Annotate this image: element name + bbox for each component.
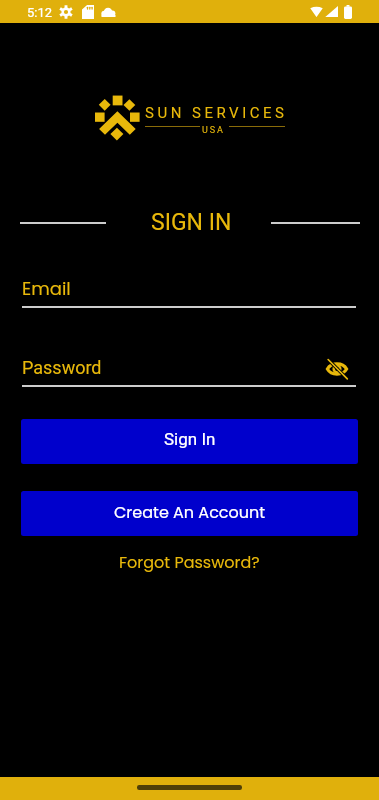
staticText: SUN SERVICES — [145, 104, 288, 122]
button[interactable]: Create An Account — [21, 491, 358, 536]
staticText: Forgot Password? — [119, 551, 260, 573]
staticText: USA — [202, 125, 225, 136]
staticText: Password — [22, 357, 102, 378]
staticText: SIGN IN — [151, 209, 232, 236]
staticText: Create An Account — [114, 501, 266, 523]
staticText: 5:12 — [27, 5, 53, 20]
staticText: Email — [22, 276, 71, 301]
button[interactable]: Toggle password visibility — [324, 356, 350, 382]
button[interactable]: Sign In — [21, 419, 358, 464]
button[interactable]: Forgot Password? — [0, 548, 379, 576]
staticText: Sign In — [164, 429, 216, 449]
